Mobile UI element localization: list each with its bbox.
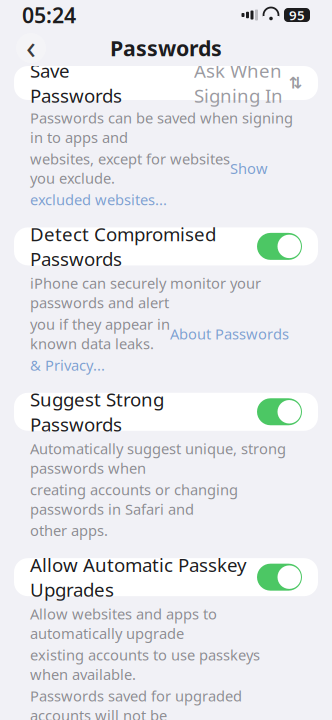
button[interactable]: Detect Compromised Passwords xyxy=(14,227,318,265)
staticText: ⇅ xyxy=(283,74,302,92)
staticText: you if they appear in known data leaks. xyxy=(30,314,170,353)
button[interactable]: Suggest Strong Passwords xyxy=(14,393,318,431)
staticText: Passwords can be saved when signing in t… xyxy=(30,108,293,147)
staticText: Allow Automatic Passkey Upgrades xyxy=(30,552,247,602)
staticText: Save Passwords xyxy=(30,58,122,108)
staticText: other apps. xyxy=(30,521,108,540)
staticText: excluded websites... xyxy=(30,190,167,209)
button[interactable]: Back xyxy=(14,31,48,65)
staticText: Suggest Strong Passwords xyxy=(30,387,164,437)
staticText: Passwords saved for upgraded accounts wi… xyxy=(30,686,242,720)
staticText: Show xyxy=(230,159,268,178)
staticText: websites, except for websites you exclud… xyxy=(30,149,230,188)
staticText: 95 xyxy=(289,6,305,24)
staticText: & Privacy... xyxy=(30,355,105,375)
button[interactable]: Allow Automatic Passkey Upgrades xyxy=(14,558,318,596)
staticText: Ask When Signing In xyxy=(194,58,283,108)
staticText: Detect Compromised Passwords xyxy=(30,222,216,271)
staticText: Automatically suggest unique, strong pas… xyxy=(30,439,286,478)
staticText: 05:24 xyxy=(22,1,76,29)
staticText: About Passwords xyxy=(170,324,289,344)
staticText: creating accounts or changing passwords … xyxy=(30,480,238,519)
staticText: Passwords xyxy=(110,34,222,62)
staticText: ‹ xyxy=(26,25,36,68)
staticText: iPhone can securely monitor your passwor… xyxy=(30,273,261,312)
staticText: existing accounts to use passkeys when a… xyxy=(30,645,260,684)
staticText: Allow websites and apps to automatically… xyxy=(30,604,217,643)
button[interactable]: Save Passwords xyxy=(14,66,318,100)
